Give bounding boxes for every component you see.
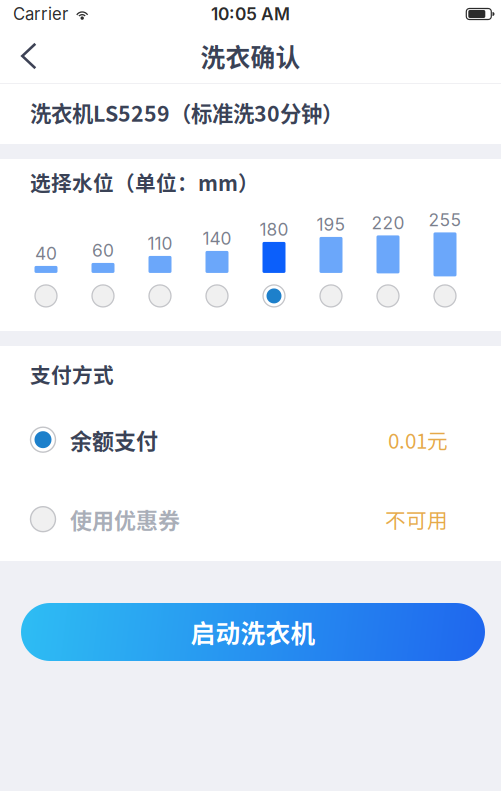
staticText: 选择水位（单位：mm）: [30, 167, 259, 197]
staticText: 140: [202, 228, 231, 249]
staticText: 110: [147, 233, 172, 254]
button[interactable]: 余额支付: [0, 400, 501, 479]
button[interactable]: 水位 255: [423, 213, 467, 308]
staticText: 0.01元: [388, 425, 448, 455]
button[interactable]: 水位 110: [138, 213, 182, 308]
button[interactable]: 水位 180: [252, 213, 296, 308]
staticText: 195: [316, 214, 345, 235]
button[interactable]: 水位 60: [81, 213, 125, 308]
staticText: 余额支付: [70, 424, 158, 456]
button[interactable]: Back: [0, 32, 55, 79]
staticText: Carrier: [13, 4, 68, 24]
staticText: 180: [259, 219, 288, 240]
staticText: 220: [371, 212, 404, 233]
button[interactable]: 使用优惠券: [0, 479, 501, 559]
staticText: 支付方式: [30, 359, 114, 389]
staticText: 洗衣机LS5259（标准洗30分钟）: [30, 97, 343, 128]
button[interactable]: 水位 40: [24, 213, 68, 308]
staticText: 10:05 AM: [211, 3, 290, 24]
staticText: 使用优惠券: [70, 503, 180, 535]
staticText: 启动洗衣机: [190, 614, 315, 650]
staticText: 洗衣确认: [200, 38, 300, 74]
staticText: 不可用: [385, 504, 448, 534]
staticText: 60: [92, 240, 114, 261]
button[interactable]: 水位 140: [195, 213, 239, 308]
button[interactable]: 水位 220: [366, 213, 410, 308]
staticText: 255: [428, 209, 461, 230]
staticText: 40: [35, 243, 57, 264]
button[interactable]: 启动洗衣机: [21, 603, 485, 661]
button[interactable]: 水位 195: [309, 213, 353, 308]
